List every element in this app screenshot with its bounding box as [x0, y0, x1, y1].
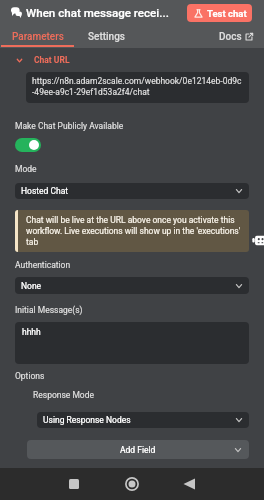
button[interactable]: Make Chat Publicly Available — [15, 138, 41, 152]
button[interactable]: https://n8n.adam2scale.com/webhook/0e121… — [26, 72, 249, 103]
staticText: None — [21, 281, 42, 291]
staticText: https://n8n.adam2scale.com/webhook/0e121… — [32, 76, 242, 97]
other: Chat trigger node — [11, 7, 22, 18]
staticText: Settings — [88, 31, 126, 43]
staticText: Docs — [219, 31, 242, 43]
button[interactable]: Hosted Chat — [15, 183, 249, 199]
staticText: Authentication — [15, 260, 71, 270]
staticText: Test chat — [207, 8, 247, 19]
staticText: hhhh — [22, 327, 41, 337]
button[interactable]: None — [15, 277, 249, 294]
staticText: Make Chat Publicly Available — [15, 121, 124, 131]
staticText: Chat URL — [34, 55, 70, 65]
button[interactable]: Home — [119, 471, 145, 497]
staticText: Response Mode — [33, 390, 95, 400]
staticText: Using Response Nodes — [43, 415, 131, 425]
button[interactable]: hhhh — [15, 322, 249, 364]
staticText: Parameters — [12, 31, 64, 43]
staticText: Chat will be live at the URL above once … — [26, 215, 243, 247]
staticText: When chat message recei... — [26, 6, 169, 20]
button[interactable]: Test chat — [187, 4, 252, 22]
staticText: Initial Message(s) — [15, 305, 83, 315]
staticText: Hosted Chat — [21, 186, 69, 196]
button[interactable]: Recents — [61, 471, 87, 497]
button[interactable]: Back — [176, 471, 202, 497]
staticText: Mode — [15, 164, 37, 174]
button[interactable]: Chat URL — [0, 52, 264, 68]
staticText: Add Field — [120, 445, 156, 455]
button[interactable]: Settings — [75, 26, 138, 48]
other: AI agent — [252, 232, 264, 249]
button[interactable]: Add Field — [27, 440, 249, 459]
button[interactable]: Using Response Nodes — [37, 412, 249, 428]
staticText: Options — [15, 371, 45, 381]
button[interactable]: Parameters — [0, 26, 75, 48]
button[interactable]: Docs — [211, 26, 264, 48]
